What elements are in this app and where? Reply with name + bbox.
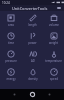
- staticText: speed: [50, 77, 58, 81]
- staticText: power: [28, 41, 37, 45]
- staticText: temperature: [45, 59, 62, 63]
- button[interactable]: length: [22, 11, 43, 29]
- button[interactable]: power: [22, 29, 43, 47]
- button[interactable]: pressure: [0, 47, 22, 65]
- staticText: weight: [49, 41, 58, 45]
- button[interactable]: temperature: [43, 47, 64, 65]
- staticText: area: [8, 23, 14, 27]
- button[interactable]: Home: [29, 91, 36, 98]
- button[interactable]: energy: [0, 65, 22, 83]
- staticText: time: [8, 41, 14, 45]
- button[interactable]: speed: [43, 65, 64, 83]
- button[interactable]: area: [0, 11, 22, 29]
- staticText: length: [28, 23, 37, 27]
- staticText: pressure: [5, 59, 17, 63]
- staticText: AD: [31, 59, 35, 63]
- staticText: density: [28, 77, 38, 81]
- button[interactable]: Back: [11, 91, 18, 98]
- button[interactable]: Recent apps: [46, 91, 53, 98]
- button[interactable]: density: [22, 65, 43, 83]
- button[interactable]: time: [0, 29, 22, 47]
- button[interactable]: weight: [43, 29, 64, 47]
- staticText: UnitConverterTools: [12, 6, 48, 11]
- button[interactable]: Settings: [55, 5, 62, 11]
- staticText: 10:24: [2, 1, 10, 5]
- staticText: energy: [6, 77, 16, 81]
- staticText: volume: [49, 23, 59, 27]
- button[interactable]: volume: [43, 11, 64, 29]
- button[interactable]: AD: [22, 47, 43, 65]
